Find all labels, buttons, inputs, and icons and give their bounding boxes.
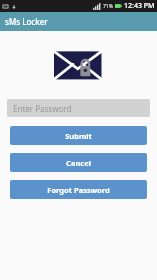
staticText: Enter Password: [13, 103, 72, 114]
staticText: Submit: [65, 131, 92, 141]
other: Locked message: [54, 45, 104, 85]
button[interactable]: Enter Password: [7, 99, 150, 117]
button[interactable]: Cancel: [10, 153, 147, 172]
button[interactable]: Forgot Password: [10, 180, 147, 199]
staticText: 71%: [103, 3, 113, 10]
staticText: 12:43 PM: [124, 1, 155, 11]
staticText: Forgot Password: [47, 185, 110, 195]
staticText: sMs Locker: [5, 16, 48, 27]
staticText: Cancel: [66, 158, 91, 168]
button[interactable]: Submit: [10, 126, 147, 145]
